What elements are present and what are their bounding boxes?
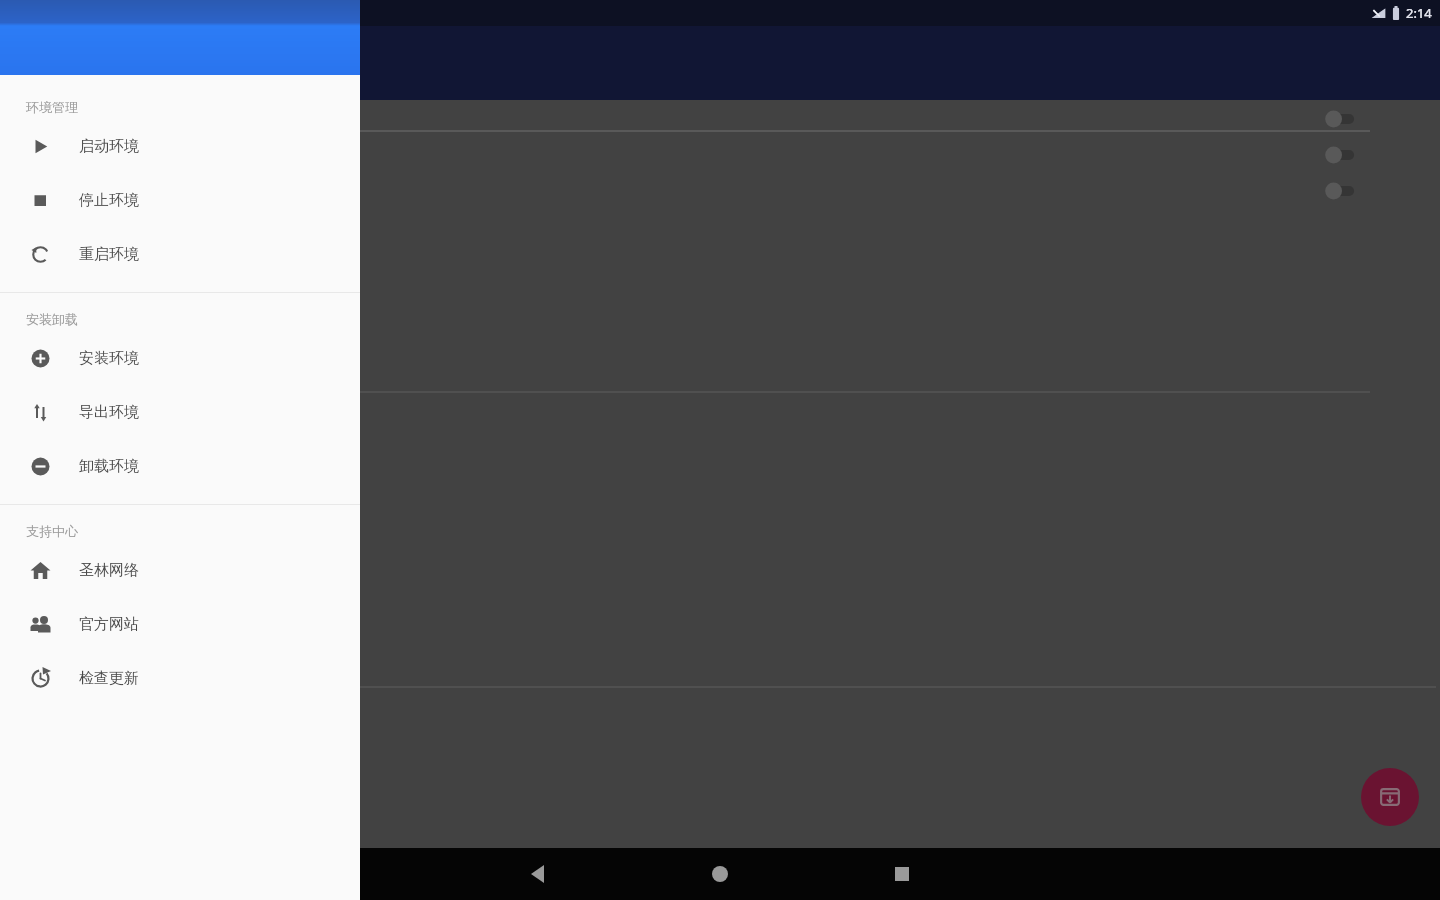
button[interactable]: 停止环境	[0, 173, 360, 227]
staticText: 启动环境	[79, 137, 139, 156]
button[interactable]: Toggle	[1326, 109, 1364, 129]
staticText: 卸载环境	[79, 457, 139, 476]
button[interactable]: 官方网站	[0, 597, 360, 651]
staticText: 环境管理	[26, 99, 78, 115]
staticText: 导出环境	[79, 403, 139, 422]
staticText: 安装卸载	[26, 311, 78, 327]
button[interactable]: 圣林网络	[0, 543, 360, 597]
button[interactable]: 安装环境	[0, 331, 360, 385]
button[interactable]: Open archive	[1361, 768, 1419, 826]
staticText: 2:14	[1406, 4, 1432, 22]
staticText: 安装环境	[79, 349, 139, 368]
button[interactable]: Toggle	[1326, 181, 1364, 201]
button[interactable]: 重启环境	[0, 227, 360, 281]
staticText: 圣林网络	[79, 561, 139, 580]
staticText: 2:14	[1406, 4, 1432, 22]
staticText: 检查更新	[79, 669, 139, 688]
button[interactable]: 导出环境	[0, 385, 360, 439]
staticText: 停止环境	[79, 191, 139, 210]
staticText: 官方网站	[79, 615, 139, 634]
button[interactable]: 卸载环境	[0, 439, 360, 493]
staticText: 重启环境	[79, 245, 139, 264]
staticText: 支持中心	[26, 523, 78, 539]
button[interactable]: Toggle	[1326, 145, 1364, 165]
button[interactable]: 检查更新	[0, 651, 360, 705]
button[interactable]: 启动环境	[0, 119, 360, 173]
